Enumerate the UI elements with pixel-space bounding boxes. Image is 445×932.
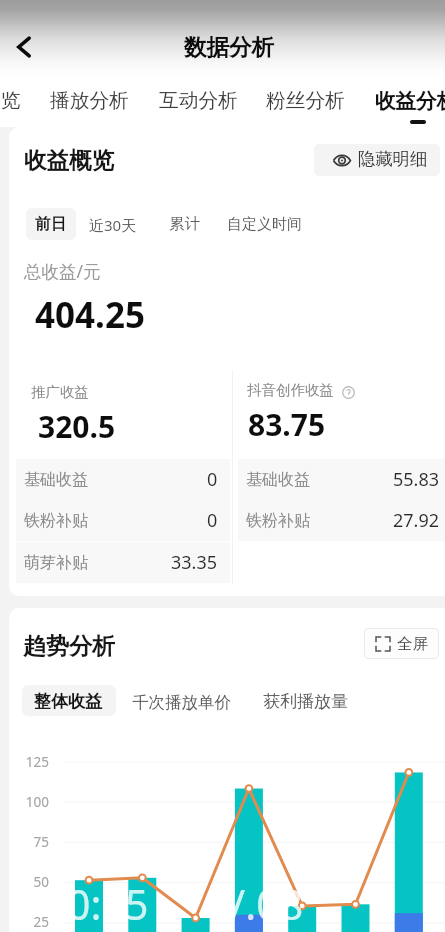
staticText: 播放分析: [50, 88, 129, 113]
button[interactable]: 播放分析: [50, 76, 129, 127]
button[interactable]: 全屏: [364, 628, 439, 659]
staticText: 33.35: [171, 550, 218, 575]
staticText: 75: [9, 833, 49, 851]
staticText: 收益分析: [375, 88, 445, 114]
staticText: 全屏: [397, 634, 428, 654]
staticText: 累计: [169, 214, 200, 234]
staticText: 总览: [0, 88, 21, 113]
staticText: 数据分析: [184, 33, 274, 61]
staticText: 铁粉补贴: [246, 511, 310, 531]
staticText: 近30天: [89, 215, 137, 235]
staticText: 0:15: [67, 876, 149, 932]
button[interactable]: 粉丝分析: [266, 76, 345, 127]
staticText: 55.83: [393, 467, 440, 492]
button[interactable]: 总览: [0, 76, 21, 127]
button[interactable]: 收益分析: [375, 76, 445, 127]
staticText: 基础收益: [246, 470, 310, 490]
button[interactable]: [162, 208, 195, 240]
button[interactable]: 铁粉补贴: [238, 500, 445, 541]
staticText: 整体收益: [34, 691, 102, 712]
button[interactable]: 基础收益: [16, 459, 230, 500]
staticText: 萌芽补贴: [24, 553, 88, 573]
staticText: 千次播放单价: [132, 692, 231, 713]
staticText: 推广收益: [31, 383, 89, 401]
staticText: 404.25: [35, 291, 145, 339]
staticText: 基础收益: [24, 470, 88, 490]
staticText: 0: [207, 467, 218, 492]
button[interactable]: [220, 208, 296, 240]
staticText: 粉丝分析: [266, 88, 345, 113]
button[interactable]: 萌芽补贴: [16, 542, 230, 583]
button[interactable]: Back: [1, 24, 47, 70]
button[interactable]: [26, 208, 76, 240]
button[interactable]: 隐藏明细: [314, 144, 440, 176]
staticText: 隐藏明细: [358, 148, 428, 170]
staticText: 50: [9, 873, 49, 891]
staticText: 获利播放量: [263, 691, 348, 712]
staticText: /.08: [230, 876, 304, 932]
staticText: 83.75: [248, 404, 326, 445]
staticText: 自定义时间: [227, 215, 302, 234]
button[interactable]: [82, 208, 127, 240]
staticText: 抖音创作收益: [247, 381, 334, 399]
staticText: 0: [207, 508, 218, 533]
button[interactable]: 互动分析: [159, 76, 238, 127]
staticText: 25: [9, 913, 49, 931]
staticText: 互动分析: [159, 88, 238, 113]
button[interactable]: 铁粉补贴: [16, 500, 230, 541]
staticText: 总收益/元: [24, 259, 101, 283]
staticText: 铁粉补贴: [24, 511, 88, 531]
staticText: 320.5: [38, 406, 116, 447]
button[interactable]: [256, 685, 356, 717]
staticText: 125: [9, 753, 49, 771]
staticText: 100: [9, 793, 49, 811]
staticText: 趋势分析: [23, 632, 115, 661]
staticText: 27.92: [393, 508, 440, 533]
staticText: 收益概览: [24, 146, 114, 174]
button[interactable]: [125, 685, 231, 717]
button[interactable]: [22, 685, 116, 716]
button[interactable]: 基础收益: [238, 459, 445, 500]
staticText: 前日: [35, 214, 66, 234]
